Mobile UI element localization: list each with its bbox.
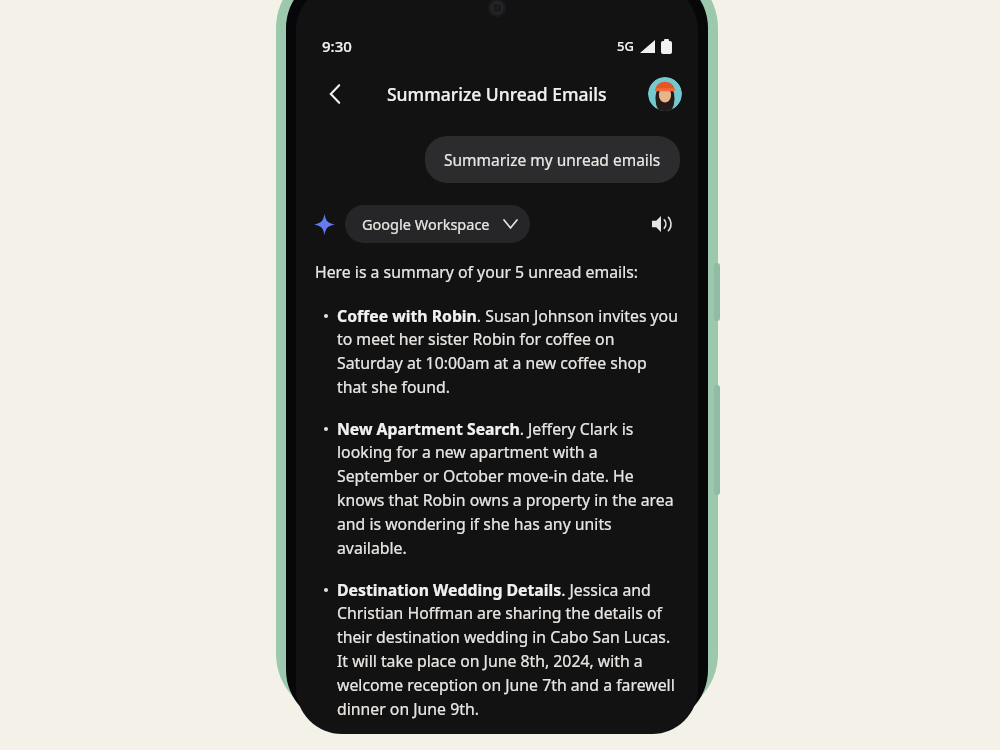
button[interactable]: Read aloud (642, 205, 680, 243)
staticText: Summarize my unread emails (444, 149, 661, 170)
staticText: Coffee with Robin. Susan Johnson invites… (337, 305, 679, 398)
staticText: Here is a summary of your 5 unread email… (315, 261, 639, 283)
staticText: Google Workspace (362, 214, 490, 234)
staticText: Destination Wedding Details. Jessica and… (337, 579, 679, 720)
staticText: Summarize Unread Emails (387, 82, 607, 106)
staticText: 9:30 (322, 36, 352, 56)
staticText: 5G (617, 37, 634, 55)
button[interactable]: Back (314, 72, 358, 116)
button[interactable]: Google Workspace (345, 205, 530, 243)
button[interactable]: Summarize my unread emails (425, 136, 680, 183)
other: Power (714, 385, 720, 495)
button[interactable]: Account (648, 77, 682, 111)
staticText: New Apartment Search. Jeffery Clark is l… (337, 418, 679, 559)
other: Volume (714, 263, 720, 321)
